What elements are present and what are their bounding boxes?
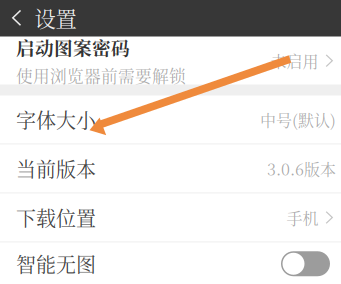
staticText: 当前版本: [16, 154, 96, 183]
button[interactable]: 启动图案密码: [0, 37, 341, 85]
button[interactable]: 智能无图: [0, 242, 341, 284]
button[interactable]: Back: [0, 0, 88, 37]
button[interactable]: 当前版本: [0, 144, 341, 192]
staticText: 设置: [34, 2, 76, 33]
staticText: 未启用: [270, 49, 318, 72]
staticText: 使用浏览器前需要解锁: [16, 64, 186, 88]
button[interactable]: 下载位置: [0, 193, 341, 241]
staticText: 3.0.6版本: [267, 157, 336, 180]
staticText: 手机: [286, 206, 318, 229]
staticText: 字体大小: [16, 105, 96, 134]
button[interactable]: 字体大小: [0, 95, 341, 143]
staticText: 智能无图: [16, 249, 96, 278]
staticText: 启动图案密码: [16, 34, 130, 61]
staticText: 中号(默认): [260, 108, 336, 131]
staticText: 下载位置: [16, 203, 96, 232]
